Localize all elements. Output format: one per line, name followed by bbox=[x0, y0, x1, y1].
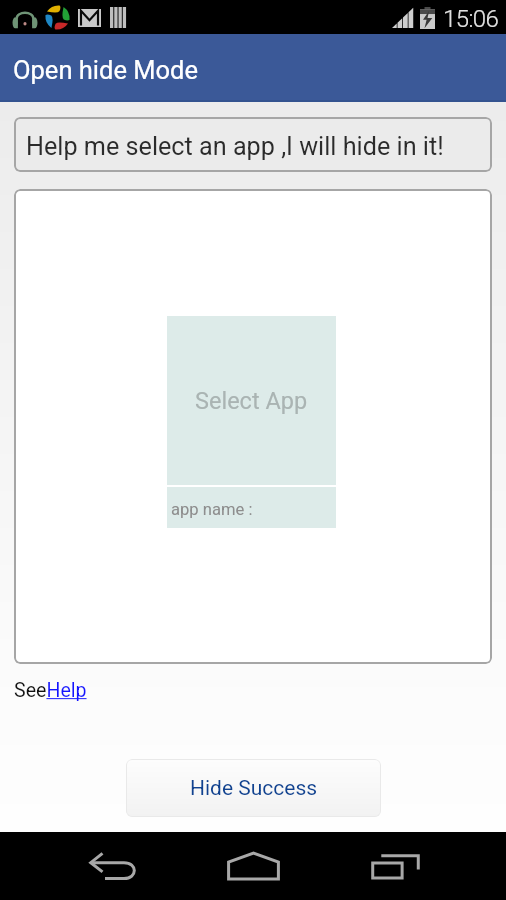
button[interactable]: Select App bbox=[167, 316, 336, 528]
staticText: Open hide Mode bbox=[13, 55, 198, 85]
staticText: Hide Success bbox=[190, 776, 318, 801]
button[interactable]: Hide Success bbox=[126, 759, 381, 817]
staticText: app name : bbox=[171, 500, 253, 519]
button[interactable]: Back bbox=[73, 836, 154, 896]
button[interactable]: Recent apps bbox=[354, 836, 436, 896]
staticText: Help me select an app ,I will hide in it… bbox=[26, 132, 444, 162]
staticText: 15:06 bbox=[443, 5, 499, 33]
button[interactable]: Help me select an app ,I will hide in it… bbox=[14, 117, 492, 172]
button[interactable]: Home bbox=[212, 836, 294, 896]
staticText: SeeHelp bbox=[14, 679, 87, 702]
button[interactable]: SeeHelp bbox=[14, 679, 87, 702]
staticText: Select App bbox=[195, 387, 308, 415]
